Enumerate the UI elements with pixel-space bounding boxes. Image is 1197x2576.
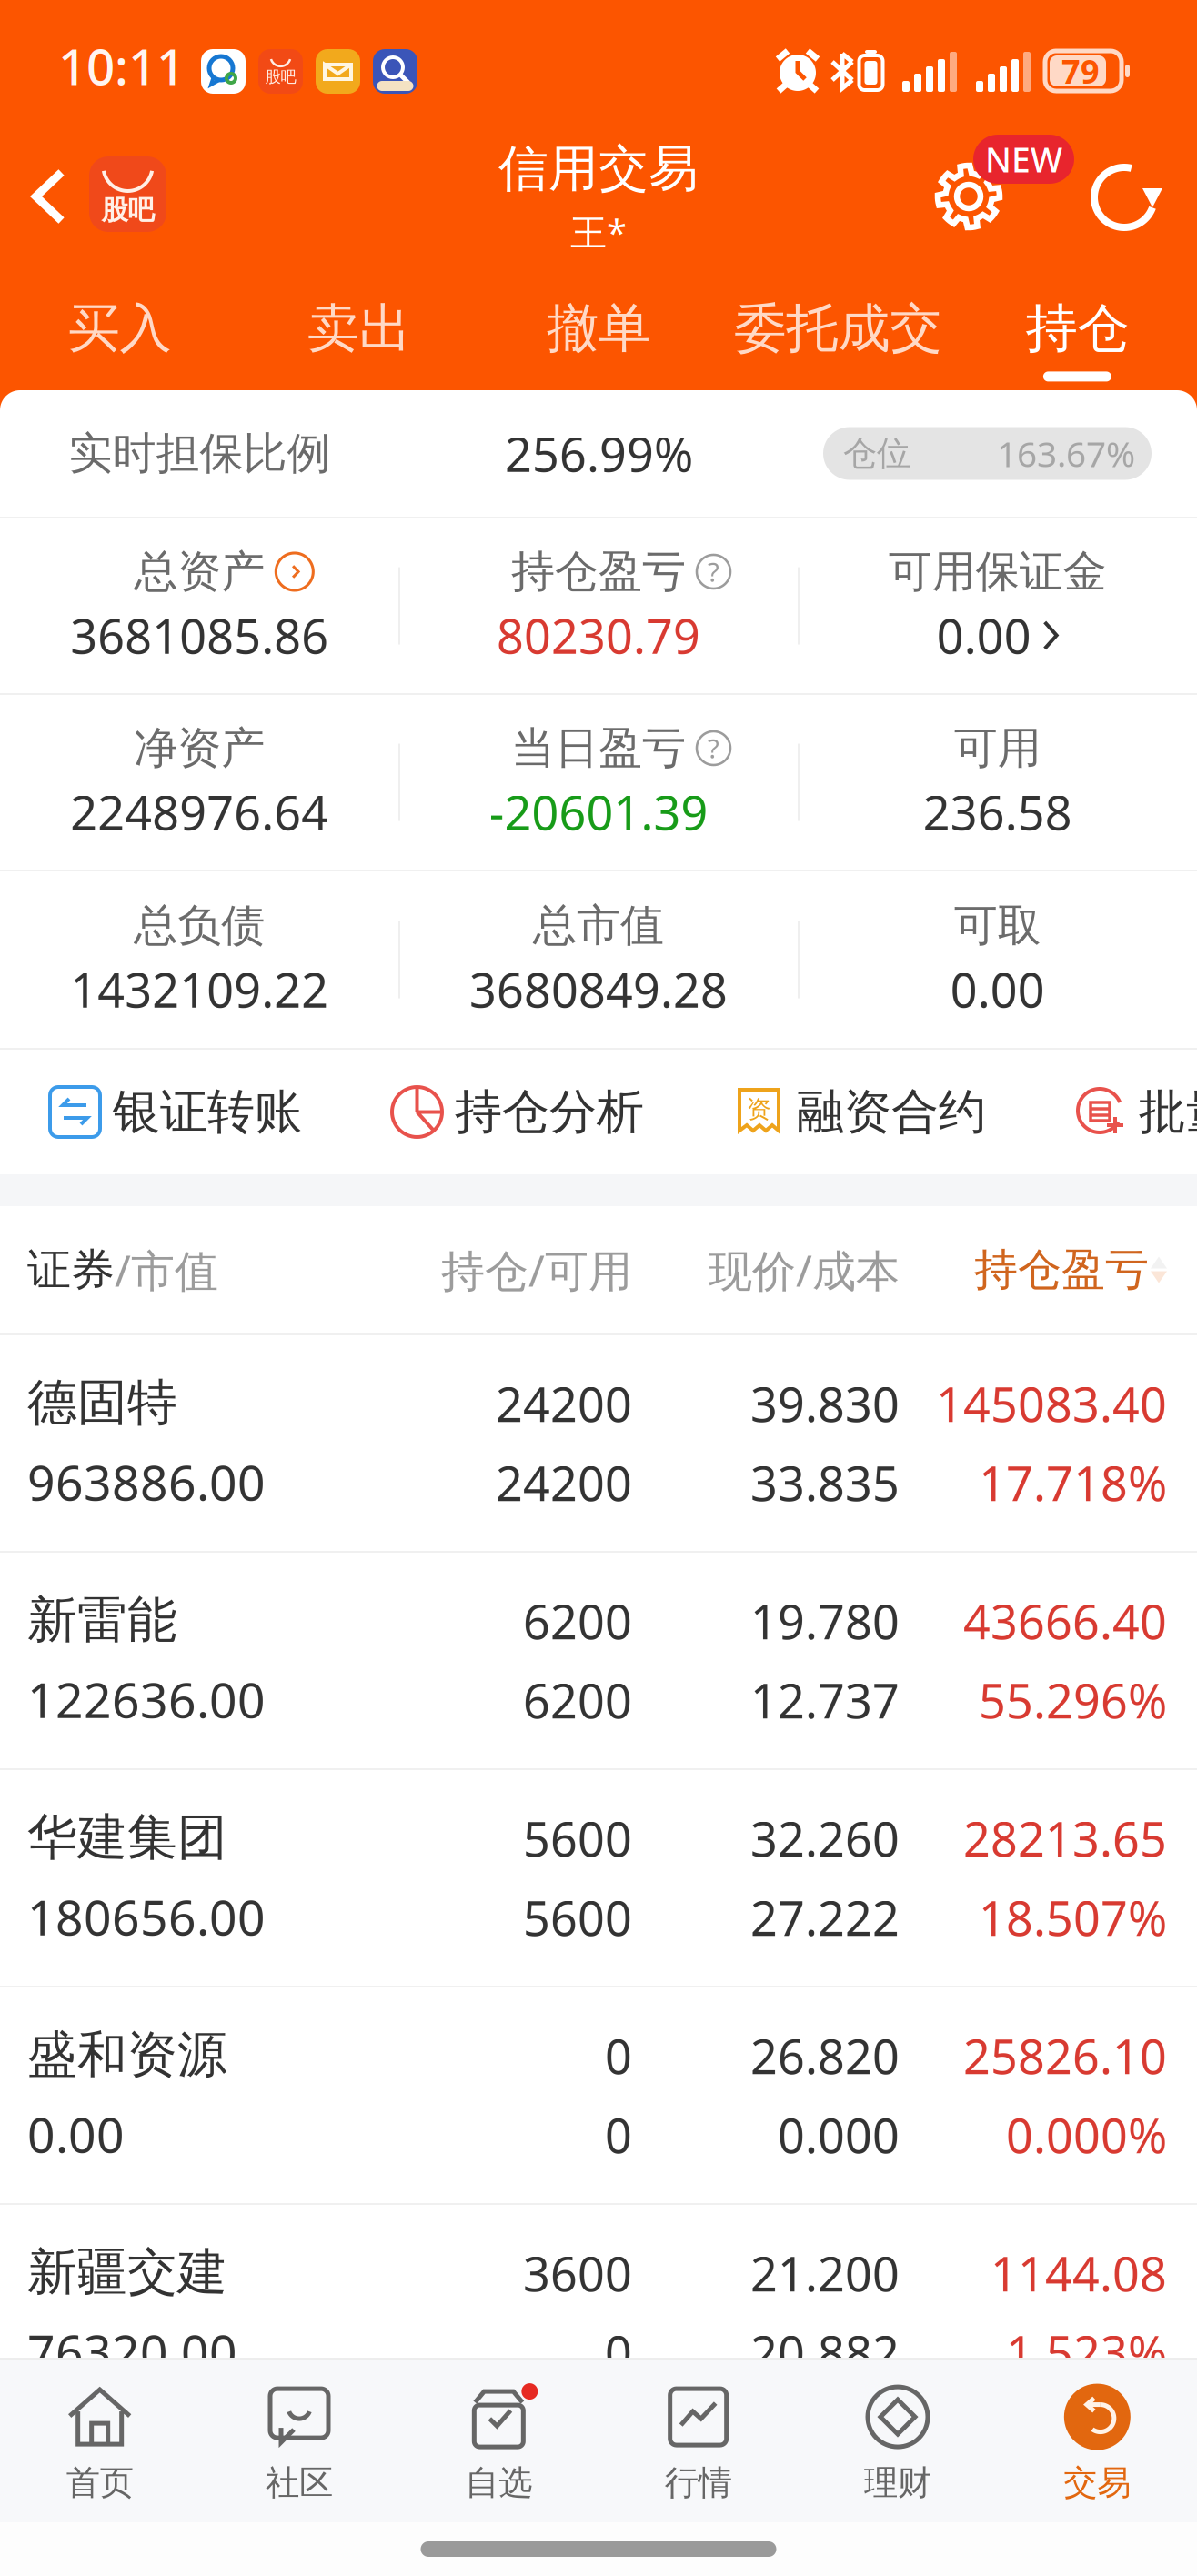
button[interactable]: 持仓盈亏: [974, 1243, 1167, 1297]
staticText: 163.67%: [997, 430, 1135, 477]
button[interactable]: 德固特: [0, 1335, 1197, 1551]
staticText: 24200: [496, 1372, 632, 1435]
staticText: 银证转账: [113, 1083, 302, 1141]
button[interactable]: 理财: [798, 2360, 997, 2522]
staticText: 0: [605, 2024, 632, 2087]
staticText: 实时担保比例: [69, 427, 331, 480]
staticText: 卖出: [307, 297, 411, 361]
staticText: 12.737: [750, 1669, 900, 1732]
staticText: 自选: [465, 2462, 532, 2504]
staticText: 236.58: [923, 780, 1072, 843]
button[interactable]: Back: [32, 168, 65, 225]
staticText: 39.830: [750, 1372, 900, 1435]
button[interactable]: 批量: [1076, 1083, 1197, 1141]
staticText: 融资合约: [797, 1083, 986, 1141]
staticText: 总负债: [134, 899, 265, 952]
staticText: 持仓: [1025, 297, 1129, 361]
button[interactable]: 买入: [0, 297, 239, 371]
button[interactable]: 卖出: [239, 297, 479, 371]
button[interactable]: 行情: [598, 2360, 798, 2522]
button[interactable]: 银证转账: [50, 1083, 302, 1141]
button[interactable]: 可用保证金: [798, 545, 1197, 667]
button[interactable]: 当日盈亏: [399, 721, 798, 843]
button[interactable]: 新雷能: [0, 1553, 1197, 1768]
button[interactable]: 刷新: [1091, 164, 1164, 231]
button[interactable]: 持仓分析: [392, 1083, 644, 1141]
staticText: -20601.39: [489, 780, 708, 843]
staticText: 5600: [523, 1886, 632, 1949]
button[interactable]: 新疆交建: [0, 2205, 1197, 2420]
staticText: 王*: [570, 207, 627, 256]
staticText: 25826.10: [963, 2024, 1167, 2087]
staticText: 净资产: [134, 721, 265, 775]
staticText: 1.523%: [1006, 2321, 1167, 2384]
staticText: 963886.00: [27, 1450, 266, 1514]
staticText: 撤单: [547, 297, 650, 361]
staticText: 理财: [864, 2462, 931, 2504]
button[interactable]: 持仓: [958, 297, 1197, 371]
staticText: 行情: [665, 2462, 732, 2504]
staticText: 0.00: [950, 958, 1045, 1021]
staticText: 55.296%: [979, 1669, 1167, 1732]
staticText: 批量: [1139, 1083, 1197, 1141]
staticText: ?: [708, 730, 719, 766]
staticText: 32.260: [750, 1807, 900, 1870]
staticText: 持仓/可用: [441, 1241, 632, 1299]
button[interactable]: 资: [734, 1083, 986, 1141]
button[interactable]: 盛和资源: [0, 1987, 1197, 2203]
staticText: 0.000%: [1006, 2103, 1167, 2166]
button[interactable]: 撤单: [479, 297, 718, 371]
staticText: 总资产: [134, 545, 265, 599]
button[interactable]: 设置: [934, 162, 1003, 231]
staticText: 持仓盈亏: [974, 1243, 1149, 1297]
staticText: 256.99%: [505, 422, 693, 485]
button[interactable]: 华建集团: [0, 1770, 1197, 1986]
staticText: 现价/成本: [709, 1241, 900, 1299]
button[interactable]: 首页: [0, 2360, 199, 2522]
staticText: 0.000: [778, 2103, 900, 2166]
staticText: 18.507%: [979, 1886, 1167, 1949]
button[interactable]: 股吧: [89, 156, 166, 232]
staticText: 委托成交: [734, 297, 942, 361]
staticText: 6200: [523, 1669, 632, 1732]
button[interactable]: 交易: [998, 2360, 1197, 2522]
button[interactable]: 社区: [199, 2360, 399, 2522]
staticText: 10:11: [58, 33, 185, 99]
staticText: 3600: [523, 2242, 632, 2304]
staticText: 17.718%: [979, 1451, 1167, 1514]
staticText: 1432109.22: [70, 958, 329, 1021]
staticText: 0.00: [27, 2102, 125, 2166]
staticText: 180656.00: [27, 1884, 266, 1949]
staticText: 76320.00: [27, 2319, 237, 2384]
staticText: 可用保证金: [888, 545, 1107, 599]
staticText: 持仓盈亏: [511, 545, 686, 599]
staticText: 股吧: [101, 194, 154, 226]
staticText: 德固特: [27, 1372, 177, 1433]
staticText: 0.00: [937, 604, 1031, 667]
staticText: 122636.00: [27, 1667, 266, 1731]
staticText: 买入: [68, 297, 172, 361]
staticText: 80230.79: [497, 604, 700, 667]
staticText: 股吧: [265, 67, 296, 87]
staticText: 3681085.86: [70, 604, 329, 667]
staticText: 社区: [266, 2462, 333, 2504]
staticText: 3680849.28: [469, 958, 728, 1021]
staticText: 24200: [496, 1451, 632, 1514]
button[interactable]: 自选: [399, 2360, 598, 2522]
staticText: 证券: [27, 1243, 115, 1297]
staticText: 28213.65: [963, 1807, 1167, 1870]
staticText: 首页: [66, 2462, 133, 2504]
staticText: 可取: [954, 899, 1041, 952]
staticText: 可用: [954, 721, 1041, 775]
staticText: 6200: [523, 1589, 632, 1652]
staticText: 1144.08: [991, 2242, 1167, 2304]
button[interactable]: 持仓盈亏: [399, 545, 798, 667]
staticText: 华建集团: [27, 1807, 227, 1868]
staticText: 2248976.64: [70, 780, 329, 843]
staticText: 0: [605, 2321, 632, 2384]
staticText: 总市值: [533, 899, 664, 952]
staticText: 27.222: [750, 1886, 900, 1949]
staticText: 信用交易: [498, 138, 699, 199]
button[interactable]: 委托成交: [718, 297, 958, 371]
button[interactable]: 总资产: [0, 545, 399, 667]
